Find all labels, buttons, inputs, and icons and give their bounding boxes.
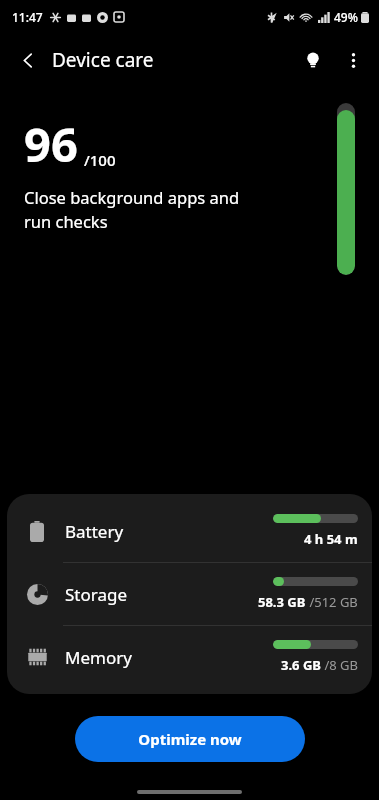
staticText: Memory xyxy=(65,646,132,669)
button[interactable]: More options xyxy=(333,40,373,80)
staticText: 3.6 GB xyxy=(281,656,321,674)
button[interactable]: Tips xyxy=(293,40,333,80)
button[interactable]: Optimize now xyxy=(75,716,305,762)
staticText: /100 xyxy=(84,150,116,170)
button[interactable]: Memory xyxy=(7,626,372,688)
staticText: /512 GB xyxy=(306,593,358,611)
staticText: 11:47 xyxy=(12,9,43,25)
staticText: Close background apps and run checks xyxy=(24,186,240,233)
staticText: 4 h 54 m xyxy=(304,530,358,548)
button[interactable]: Battery xyxy=(7,500,372,562)
button[interactable]: Back xyxy=(8,40,48,80)
staticText: Battery xyxy=(65,520,124,543)
staticText: Optimize now xyxy=(138,729,242,749)
staticText: 49% xyxy=(334,9,358,25)
staticText: 58.3 GB xyxy=(258,593,306,611)
staticText: Storage xyxy=(65,583,128,606)
button[interactable]: Storage xyxy=(7,563,372,625)
staticText: /8 GB xyxy=(321,656,358,674)
staticText: Device care xyxy=(52,47,154,73)
staticText: 96 xyxy=(24,112,78,176)
